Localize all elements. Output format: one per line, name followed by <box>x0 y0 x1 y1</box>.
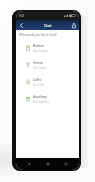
staticText: Auxiliary <box>33 94 48 99</box>
staticText: 9:41 <box>19 14 25 18</box>
button[interactable]: Auxiliary <box>16 90 79 107</box>
button[interactable]: Back <box>16 20 26 30</box>
staticText: Lofts <box>33 77 42 82</box>
staticText: Your brakes <box>33 49 48 53</box>
button[interactable]: Back <box>23 158 35 170</box>
button[interactable]: Home <box>42 158 54 170</box>
staticText: Your auxiliary <box>33 100 50 104</box>
button[interactable]: Lofts <box>16 73 79 90</box>
staticText: Your home <box>33 66 47 70</box>
staticText: Who would you like to heal? <box>19 33 57 37</box>
staticText: Chat <box>44 23 52 28</box>
button[interactable]: Brakes <box>16 39 79 56</box>
button[interactable]: Home <box>16 56 79 73</box>
button[interactable]: Share <box>69 20 79 30</box>
staticText: Home <box>33 60 43 65</box>
staticText: Your lofts <box>33 83 45 87</box>
staticText: Brakes <box>33 43 45 48</box>
button[interactable]: Recents <box>60 158 72 170</box>
